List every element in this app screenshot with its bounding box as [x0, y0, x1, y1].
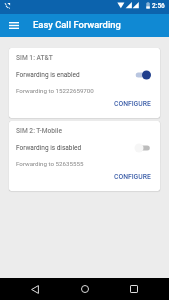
staticText: CONFIGURE — [114, 173, 151, 181]
other: Wi-Fi and mobile signal — [0, 0, 169, 14]
staticText: Forwarding is disabled — [16, 144, 133, 152]
staticText: Forwarding to 52635555 — [16, 160, 84, 167]
button[interactable]: CONFIGURE — [110, 172, 155, 182]
staticText: SIM 2: T-Mobile — [16, 127, 62, 135]
staticText: Forwarding is enabled — [16, 71, 133, 79]
staticText: Easy Call Forwarding — [33, 19, 121, 30]
staticText: Forwarding to 15222659700 — [16, 87, 94, 94]
button[interactable]: Home — [70, 278, 100, 300]
button[interactable]: Open navigation drawer — [0, 14, 27, 37]
other: Call forwarding active — [4, 3, 10, 9]
staticText: SIM 1: AT&T — [16, 54, 53, 62]
button[interactable]: Back — [20, 278, 50, 300]
staticText: CONFIGURE — [114, 100, 151, 108]
button[interactable]: Forwarding on — [133, 68, 153, 82]
staticText: 2:56 — [152, 2, 165, 10]
button[interactable]: SIM 2: T-Mobile — [9, 121, 160, 191]
button[interactable]: SIM 1: AT&T — [9, 48, 160, 118]
button[interactable]: Forwarding off — [133, 141, 153, 155]
button[interactable]: Recent apps — [119, 278, 149, 300]
button[interactable]: CONFIGURE — [110, 99, 155, 109]
